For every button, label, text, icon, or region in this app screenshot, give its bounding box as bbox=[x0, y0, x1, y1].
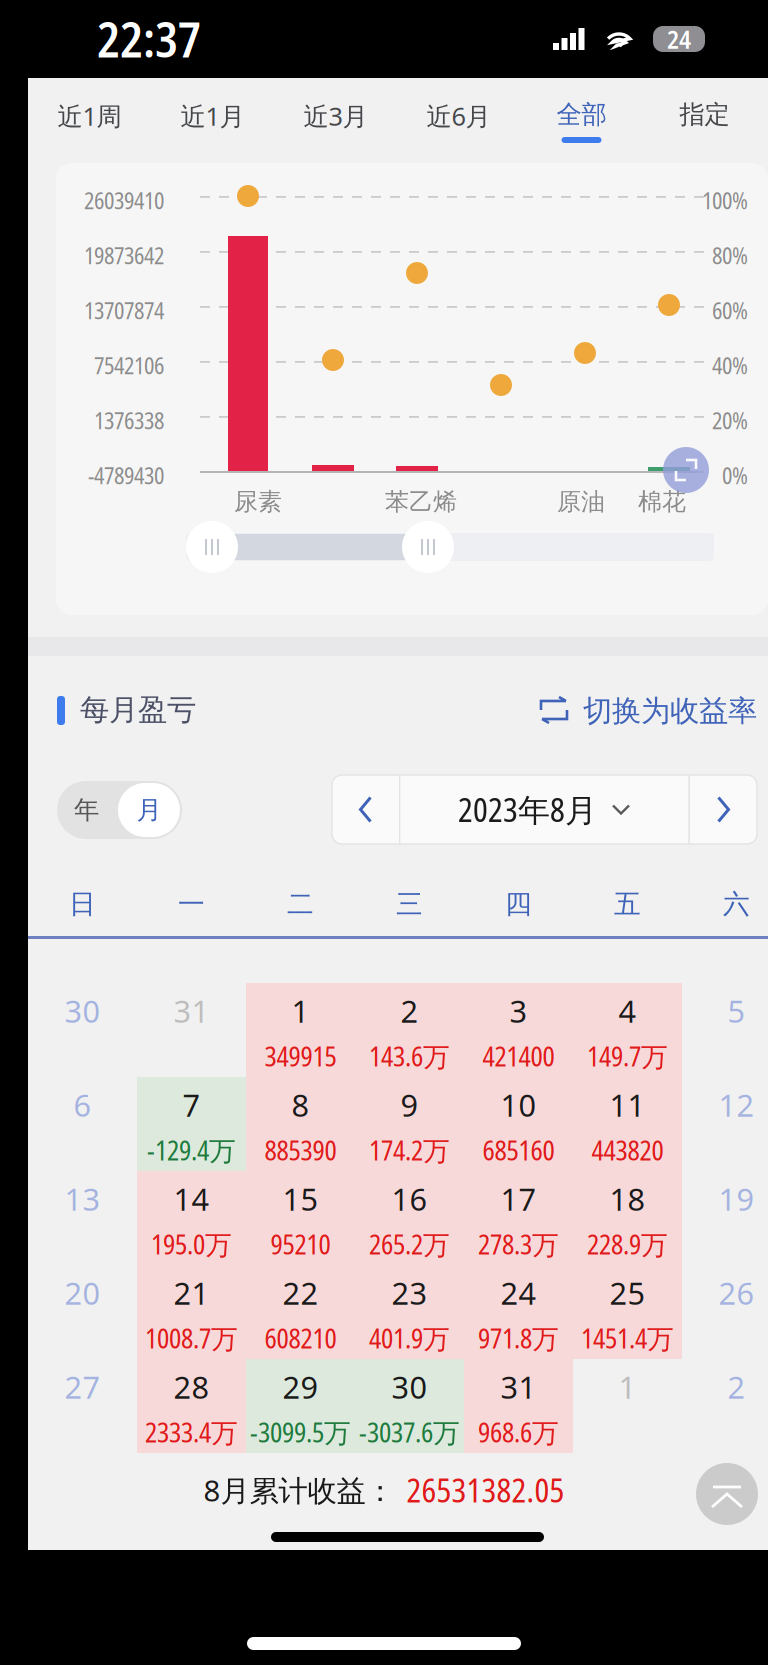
staticText: 24 bbox=[500, 1272, 536, 1314]
staticText: 21 bbox=[173, 1272, 209, 1314]
staticText: 143.6万 bbox=[369, 1038, 450, 1074]
staticText: 5 bbox=[727, 990, 745, 1032]
button[interactable]: 27 bbox=[28, 1359, 137, 1453]
button[interactable]: 13 bbox=[28, 1171, 137, 1265]
button[interactable]: 14 bbox=[137, 1171, 246, 1265]
staticText: 4 bbox=[618, 990, 636, 1032]
button[interactable]: 2 bbox=[682, 1359, 768, 1453]
staticText: 27 bbox=[64, 1366, 100, 1408]
staticText: 100% bbox=[702, 185, 748, 216]
staticText: 26 bbox=[718, 1272, 754, 1314]
staticText: 六 bbox=[723, 888, 750, 920]
staticText: 原油 bbox=[557, 487, 605, 516]
button[interactable]: 8 bbox=[246, 1077, 355, 1171]
button[interactable]: 29 bbox=[246, 1359, 355, 1453]
staticText: 9 bbox=[400, 1084, 418, 1126]
button[interactable]: 2 bbox=[355, 983, 464, 1077]
button[interactable]: 22 bbox=[246, 1265, 355, 1359]
staticText: 四 bbox=[505, 888, 532, 920]
staticText: 30 bbox=[64, 990, 100, 1032]
button[interactable]: 切换为收益率 bbox=[539, 691, 757, 731]
button[interactable]: 6 bbox=[28, 1077, 137, 1171]
staticText: 8 bbox=[291, 1084, 309, 1126]
staticText: 1376338 bbox=[94, 405, 164, 436]
staticText: -3099.5万 bbox=[250, 1414, 351, 1450]
staticText: 2333.4万 bbox=[145, 1414, 238, 1450]
button[interactable]: 1 bbox=[573, 1359, 682, 1453]
staticText: 40% bbox=[712, 350, 748, 381]
staticText: 15 bbox=[282, 1178, 318, 1220]
button[interactable]: 近1月 bbox=[151, 78, 274, 158]
button[interactable]: 年 bbox=[57, 781, 182, 839]
staticText: 尿素 bbox=[234, 487, 282, 516]
staticText: 885390 bbox=[264, 1132, 336, 1168]
button[interactable]: 近3月 bbox=[274, 78, 397, 158]
staticText: 149.7万 bbox=[587, 1038, 668, 1074]
staticText: 二 bbox=[287, 888, 314, 920]
staticText: 8月累计收益： bbox=[203, 1470, 394, 1509]
button[interactable]: 2023年8月 bbox=[400, 775, 688, 844]
button[interactable]: 21 bbox=[137, 1265, 246, 1359]
button[interactable]: 12 bbox=[682, 1077, 768, 1171]
button[interactable]: 近6月 bbox=[397, 78, 520, 158]
staticText: 7 bbox=[182, 1084, 200, 1126]
button[interactable]: 26 bbox=[682, 1265, 768, 1359]
staticText: 月 bbox=[136, 794, 161, 825]
staticText: 26531382.05 bbox=[406, 1468, 564, 1512]
button[interactable]: 3 bbox=[464, 983, 573, 1077]
button[interactable]: 24 bbox=[464, 1265, 573, 1359]
staticText: 25 bbox=[609, 1272, 645, 1314]
button[interactable]: 17 bbox=[464, 1171, 573, 1265]
staticText: 17 bbox=[500, 1178, 536, 1220]
staticText: 349915 bbox=[264, 1038, 336, 1074]
button[interactable]: 9 bbox=[355, 1077, 464, 1171]
staticText: 28 bbox=[173, 1366, 209, 1408]
button[interactable]: 5 bbox=[682, 983, 768, 1077]
button[interactable]: 指定 bbox=[643, 78, 766, 158]
button[interactable]: 1 bbox=[246, 983, 355, 1077]
button[interactable]: 7 bbox=[137, 1077, 246, 1171]
staticText: 971.8万 bbox=[478, 1320, 559, 1356]
staticText: 1 bbox=[618, 1366, 636, 1408]
staticText: 切换为收益率 bbox=[583, 693, 757, 729]
button[interactable]: 15 bbox=[246, 1171, 355, 1265]
button[interactable]: 23 bbox=[355, 1265, 464, 1359]
button[interactable]: 10 bbox=[464, 1077, 573, 1171]
button[interactable]: 19 bbox=[682, 1171, 768, 1265]
staticText: 14 bbox=[173, 1178, 209, 1220]
button[interactable]: 31 bbox=[137, 983, 246, 1077]
staticText: 443820 bbox=[591, 1132, 663, 1168]
staticText: 608210 bbox=[264, 1320, 336, 1356]
staticText: 0% bbox=[722, 460, 748, 491]
button[interactable]: Scroll to top bbox=[696, 1463, 758, 1525]
button[interactable]: 11 bbox=[573, 1077, 682, 1171]
button[interactable]: 近1周 bbox=[28, 78, 151, 158]
button[interactable]: 30 bbox=[355, 1359, 464, 1453]
button[interactable]: 25 bbox=[573, 1265, 682, 1359]
staticText: 11 bbox=[609, 1084, 645, 1126]
staticText: 22 bbox=[282, 1272, 318, 1314]
button[interactable]: 28 bbox=[137, 1359, 246, 1453]
staticText: 6 bbox=[73, 1084, 91, 1126]
staticText: 近6月 bbox=[426, 99, 490, 133]
staticText: 968.6万 bbox=[478, 1414, 559, 1450]
staticText: 全部 bbox=[556, 99, 606, 130]
button[interactable]: 20 bbox=[28, 1265, 137, 1359]
button[interactable]: 4 bbox=[573, 983, 682, 1077]
button[interactable]: 全部 bbox=[520, 78, 643, 158]
staticText: 10 bbox=[500, 1084, 536, 1126]
button[interactable]: 31 bbox=[464, 1359, 573, 1453]
button[interactable]: 18 bbox=[573, 1171, 682, 1265]
button[interactable]: Fullscreen bbox=[663, 447, 709, 493]
button[interactable]: 16 bbox=[355, 1171, 464, 1265]
staticText: 60% bbox=[712, 295, 748, 326]
button[interactable]: 30 bbox=[28, 983, 137, 1077]
staticText: 23 bbox=[391, 1272, 427, 1314]
button[interactable]: Next month bbox=[690, 775, 757, 844]
staticText: 7542106 bbox=[94, 350, 164, 381]
staticText: 12 bbox=[718, 1084, 754, 1126]
staticText: 近1月 bbox=[180, 99, 244, 133]
button[interactable]: Previous month bbox=[332, 775, 399, 844]
staticText: 265.2万 bbox=[369, 1226, 450, 1262]
staticText: 近3月 bbox=[303, 99, 367, 133]
